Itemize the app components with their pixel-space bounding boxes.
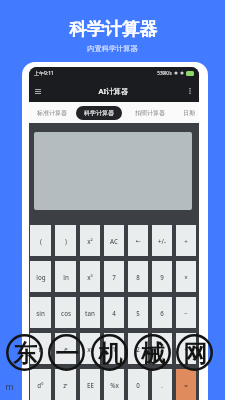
staticText: x² (87, 237, 93, 245)
staticText: AC (110, 237, 118, 245)
staticText: d° (37, 381, 44, 389)
staticText: 一 (55, 339, 79, 369)
staticText: 0 (136, 381, 140, 389)
staticText: 8 (136, 273, 140, 281)
staticText: . (161, 381, 163, 389)
staticText: 械 (141, 339, 165, 369)
button[interactable]: 科学计算器 (76, 106, 122, 120)
staticText: = (184, 381, 188, 389)
button[interactable]: 2 (128, 333, 148, 364)
staticText: cos (61, 309, 71, 317)
button[interactable]: + (176, 333, 196, 364)
staticText: 日期 (183, 109, 195, 117)
button[interactable]: e (55, 333, 76, 364)
staticText: 上午9:11 (34, 70, 54, 77)
staticText: EE (87, 381, 94, 389)
staticText: 4 (112, 309, 116, 317)
button[interactable]: 9 (152, 261, 172, 292)
staticText: 科学计算器 (69, 18, 157, 40)
button[interactable]: zʳ (55, 369, 76, 400)
staticText: 拍照计算器 (135, 109, 165, 117)
button[interactable]: 8 (128, 261, 148, 292)
staticText: xʸ (87, 345, 93, 353)
button[interactable]: = (176, 369, 196, 400)
staticText: 标准计算器 (37, 109, 67, 117)
button[interactable]: ( (30, 225, 51, 256)
button[interactable]: xʸ (80, 333, 100, 364)
staticText: sin (36, 309, 45, 317)
staticText: 东 (13, 339, 37, 369)
button[interactable]: ÷ (176, 225, 196, 256)
button[interactable]: ← (128, 225, 148, 256)
button[interactable]: Menu (32, 85, 44, 97)
staticText: 内置科学计算器 (87, 44, 138, 53)
button[interactable]: EE (80, 369, 100, 400)
staticText: ÷ (184, 237, 188, 245)
staticText: 1 (112, 345, 116, 353)
button[interactable]: 3 (152, 333, 172, 364)
button[interactable]: 7 (104, 261, 124, 292)
button[interactable]: x³ (80, 261, 100, 292)
button[interactable]: × (176, 261, 196, 292)
staticText: 6 (160, 309, 164, 317)
staticText: m (5, 380, 14, 392)
button[interactable]: ln (55, 261, 76, 292)
button[interactable]: log (30, 261, 51, 292)
staticText: tan (85, 309, 95, 317)
button[interactable]: ) (55, 225, 76, 256)
button[interactable]: sin (30, 297, 51, 328)
button[interactable]: d° (30, 369, 51, 400)
staticText: ln (63, 273, 69, 281)
staticText: 科学计算器 (84, 109, 114, 117)
button[interactable]: 5 (128, 297, 148, 328)
staticText: %x (110, 381, 119, 389)
staticText: ( (40, 237, 42, 245)
staticText: zʳ (63, 381, 68, 389)
button[interactable]: 6 (152, 297, 172, 328)
button[interactable]: 日期 (182, 106, 195, 120)
staticText: 3 (160, 345, 164, 353)
staticText: 机 (98, 339, 122, 369)
staticText: x³ (87, 273, 93, 281)
button[interactable]: 拍照计算器 (134, 106, 166, 120)
staticText: 9 (160, 273, 164, 281)
staticText: 539K/s (157, 70, 172, 76)
staticText: − (184, 309, 188, 317)
staticText: ← (135, 237, 141, 244)
button[interactable]: x² (80, 225, 100, 256)
staticText: +/- (158, 237, 166, 245)
button[interactable]: − (176, 297, 196, 328)
button[interactable]: . (152, 369, 172, 400)
button[interactable]: +/- (152, 225, 172, 256)
staticText: 网 (183, 339, 207, 369)
button[interactable]: AC (104, 225, 124, 256)
staticText: e (64, 345, 68, 353)
staticText: 5 (136, 309, 140, 317)
staticText: × (184, 273, 188, 281)
button[interactable]: 标准计算器 (36, 106, 68, 120)
staticText: m (200, 380, 209, 392)
button[interactable]: 0 (128, 369, 148, 400)
button[interactable]: %x (104, 369, 124, 400)
button[interactable]: 1 (104, 333, 124, 364)
button[interactable]: 4 (104, 297, 124, 328)
button[interactable]: cos (55, 297, 76, 328)
staticText: + (184, 345, 188, 353)
button[interactable]: tan (80, 297, 100, 328)
button[interactable]: More options (184, 85, 196, 97)
staticText: 2 (136, 345, 140, 353)
staticText: AI计算器 (98, 86, 129, 96)
staticText: 7 (112, 273, 116, 281)
button[interactable]: π (30, 333, 51, 364)
staticText: log (36, 273, 46, 281)
staticText: ) (65, 237, 67, 245)
staticText: π (38, 345, 43, 353)
